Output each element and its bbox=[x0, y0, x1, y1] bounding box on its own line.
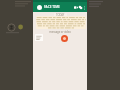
staticText: TODAY bbox=[56, 13, 65, 17]
button[interactable] bbox=[36, 16, 86, 29]
button[interactable]: Profile bbox=[37, 5, 42, 10]
button[interactable]: TODAY bbox=[56, 13, 65, 17]
staticText: message or video bbox=[33, 30, 87, 34]
staticText: FACE TIME bbox=[44, 5, 60, 9]
button[interactable]: More options bbox=[83, 4, 86, 11]
button[interactable]: Video call bbox=[73, 4, 78, 11]
button[interactable]: Voice call bbox=[78, 4, 83, 11]
button[interactable]: Attachment preview bbox=[35, 34, 43, 41]
button[interactable]: Record bbox=[61, 35, 68, 42]
